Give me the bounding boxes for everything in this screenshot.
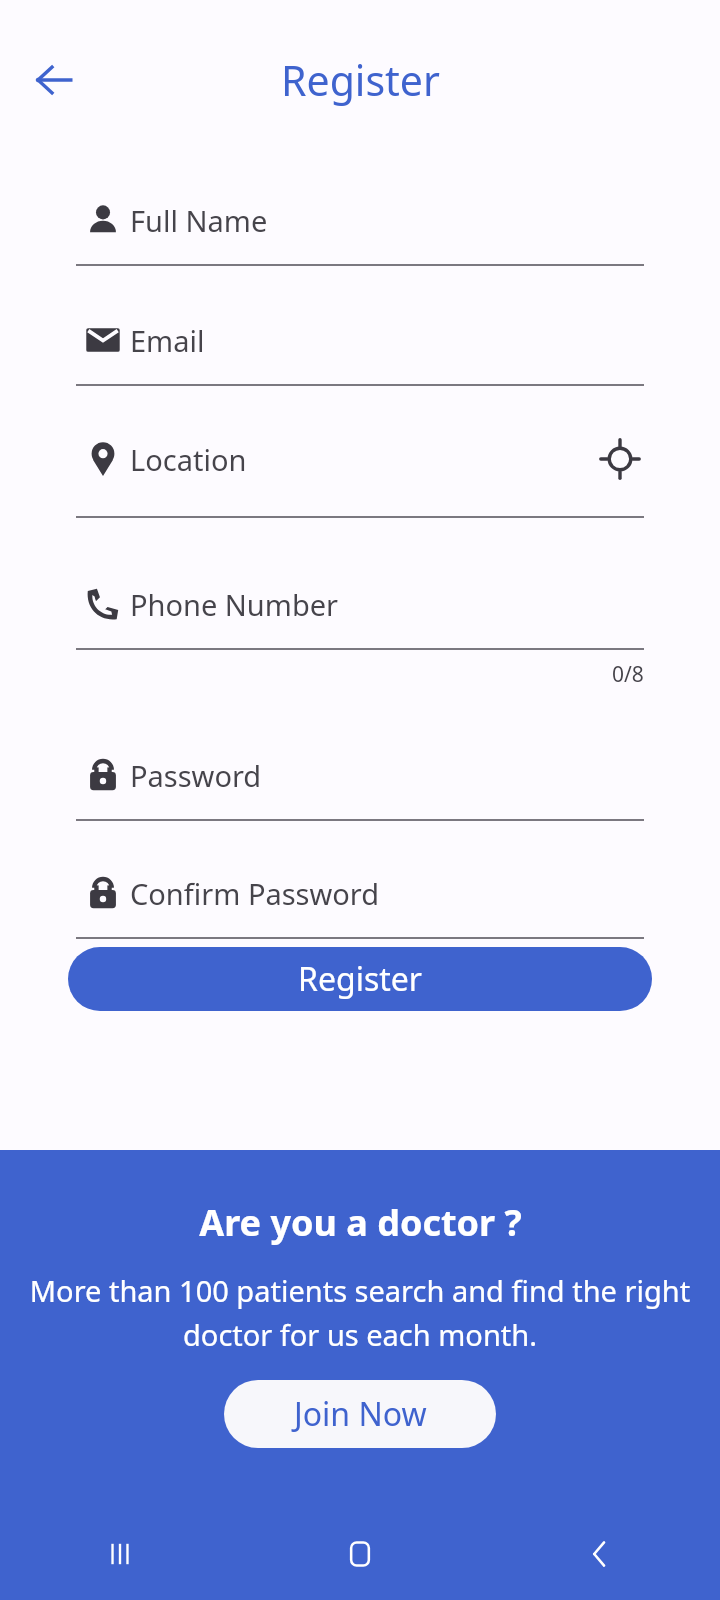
button[interactable]: Register [68, 947, 652, 1011]
staticText: 0/8 [612, 660, 644, 689]
button[interactable]: Phone Number [76, 560, 644, 648]
staticText: Register [281, 52, 440, 108]
staticText: Email [130, 321, 205, 360]
staticText: More than 100 patients search and find t… [24, 1271, 696, 1354]
staticText: Confirm Password [130, 874, 380, 913]
staticText: Phone Number [130, 585, 339, 624]
staticText: Join Now [294, 1392, 427, 1436]
staticText: Register [298, 957, 423, 1001]
button[interactable]: Use my location [596, 435, 644, 483]
staticText: Location [130, 440, 247, 479]
button[interactable]: Email [76, 296, 644, 384]
button[interactable]: Confirm Password [76, 849, 644, 937]
staticText: Password [130, 756, 262, 795]
staticText: Full Name [130, 201, 268, 240]
button[interactable]: Back [20, 46, 88, 114]
button[interactable]: Recent apps [0, 1508, 240, 1600]
button[interactable]: Back [480, 1508, 720, 1600]
button[interactable]: Location [76, 428, 644, 490]
button[interactable]: Home [240, 1508, 480, 1600]
button[interactable]: Password [76, 731, 644, 819]
button[interactable]: Full Name [76, 176, 644, 264]
staticText: Are you a doctor ? [199, 1198, 522, 1247]
button[interactable]: Join Now [224, 1380, 496, 1448]
